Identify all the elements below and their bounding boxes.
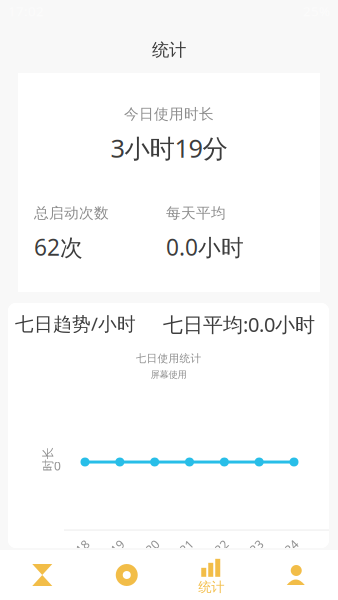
- staticText: 09-19: [95, 545, 127, 561]
- staticText: 今日使用时长: [124, 105, 214, 123]
- staticText: 09-22: [199, 545, 231, 561]
- staticText: 统计: [198, 579, 224, 595]
- staticText: 时长: [36, 452, 60, 467]
- staticText: 七日使用统计: [135, 352, 201, 365]
- staticText: 09-23: [234, 545, 266, 561]
- staticText: 09-24: [269, 545, 301, 561]
- button[interactable]: 我的: [253, 550, 338, 600]
- staticText: 总启动次数: [34, 204, 109, 222]
- staticText: 七日平均:0.0小时: [163, 311, 315, 338]
- staticText: 屏幕使用: [150, 369, 186, 380]
- button[interactable]: 统计: [169, 550, 253, 600]
- staticText: 统计: [152, 39, 186, 61]
- staticText: 七日趋势/小时: [15, 311, 136, 336]
- staticText: 09-20: [130, 545, 162, 561]
- staticText: 0.0小时: [166, 232, 244, 262]
- staticText: 09-21: [164, 545, 196, 561]
- staticText: 每天平均: [166, 204, 226, 222]
- staticText: 62次: [34, 232, 83, 262]
- button[interactable]: 计时: [0, 550, 84, 600]
- staticText: 0: [54, 458, 61, 474]
- staticText: 3小时19分: [110, 131, 227, 165]
- button[interactable]: 监控: [84, 550, 169, 600]
- staticText: 09-18: [60, 545, 92, 561]
